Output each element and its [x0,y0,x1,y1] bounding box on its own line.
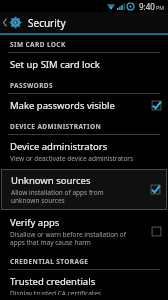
button[interactable]: Set up SIM card lock [0,53,168,76]
staticText: View or deactivate device administrators [10,154,134,163]
staticText: Unknown sources [11,174,91,187]
button[interactable]: Verify apps [0,211,168,252]
staticText: Display trusted CA certificates [10,289,101,295]
button[interactable]: Checked [151,100,162,111]
button[interactable]: Trusted credentials [0,270,168,300]
button[interactable]: Unchecked [151,226,162,237]
button[interactable]: Navigate up [0,12,25,33]
staticText: PASSWORDS [10,81,53,90]
staticText: Set up SIM card lock [10,58,100,71]
staticText: Allow installation of apps from unknown … [11,188,104,205]
staticText: Disallow or warn before installation of … [10,230,126,247]
staticText: Trusted credentials [10,275,96,288]
staticText: DEVICE ADMINISTRATION [10,122,102,131]
button[interactable]: Make passwords visible [0,94,168,117]
button[interactable]: Checked [150,184,161,195]
staticText: Verify apps [10,216,60,229]
staticText: Device administrators [10,140,108,153]
staticText: CREDENTIAL STORAGE [10,257,89,266]
staticText: Make passwords visible [10,99,115,112]
staticText: 9:40 [139,1,155,12]
staticText: PM [156,4,165,11]
button[interactable]: Unknown sources [0,168,168,211]
staticText: Security [28,16,66,30]
staticText: SIM CARD LOCK [10,40,66,49]
button[interactable]: Device administrators [0,135,168,168]
